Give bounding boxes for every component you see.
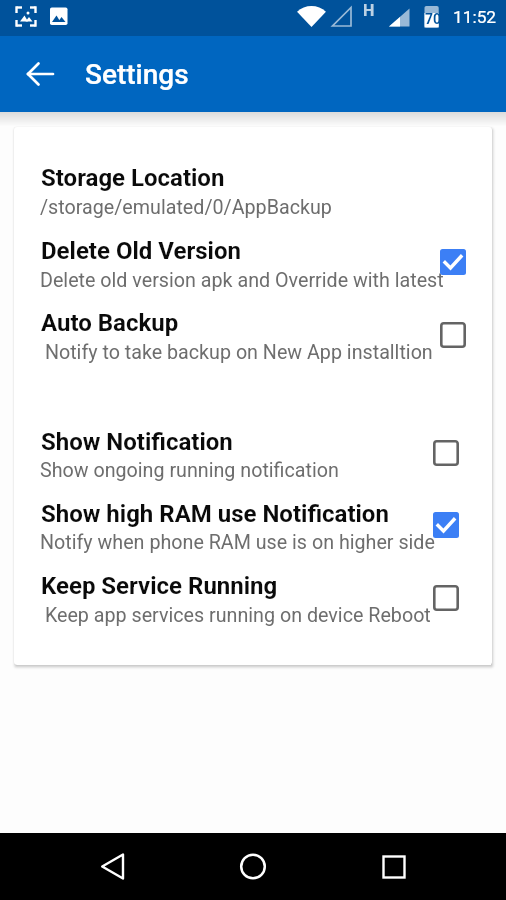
button[interactable]: Show Notification bbox=[14, 414, 492, 478]
button[interactable]: Back bbox=[96, 850, 130, 884]
button[interactable]: Show high RAM use Notification bbox=[14, 486, 492, 550]
button[interactable]: Delete Old Version bbox=[14, 223, 492, 287]
button[interactable]: Keep Service Running bbox=[421, 573, 469, 621]
button[interactable]: Keep Service Running bbox=[14, 558, 492, 622]
staticText: Keep app services running on device Rebo… bbox=[40, 604, 431, 627]
staticText: Notify when phone RAM use is on higher s… bbox=[40, 531, 435, 554]
staticText: H bbox=[363, 1, 375, 20]
staticText: Storage Location bbox=[41, 164, 225, 192]
staticText: 11:52 bbox=[453, 7, 497, 27]
staticText: Auto Backup bbox=[41, 309, 179, 337]
button[interactable]: Show Notification bbox=[421, 428, 469, 476]
button[interactable]: Storage Location bbox=[14, 150, 492, 214]
staticText: Delete old version apk and Override with… bbox=[40, 269, 444, 292]
staticText: Show high RAM use Notification bbox=[41, 500, 389, 528]
button[interactable]: Auto Backup bbox=[428, 310, 476, 358]
staticText: Show ongoing running notification bbox=[40, 459, 339, 482]
staticText: Show Notification bbox=[41, 428, 233, 456]
button[interactable]: Recent apps bbox=[378, 851, 410, 883]
staticText: Delete Old Version bbox=[41, 237, 241, 265]
staticText: Settings bbox=[85, 58, 189, 91]
staticText: Notify to take backup on New App install… bbox=[40, 341, 433, 364]
staticText: /storage/emulated/0/AppBackup bbox=[40, 196, 332, 219]
button[interactable]: Back bbox=[24, 57, 58, 91]
button[interactable]: Home bbox=[236, 850, 270, 884]
button[interactable]: Show high RAM use Notification bbox=[421, 500, 469, 548]
staticText: Keep Service Running bbox=[41, 572, 278, 600]
button[interactable]: Auto Backup bbox=[14, 295, 492, 359]
staticText: 70 bbox=[425, 11, 442, 27]
button[interactable]: Delete Old Version bbox=[428, 237, 476, 285]
